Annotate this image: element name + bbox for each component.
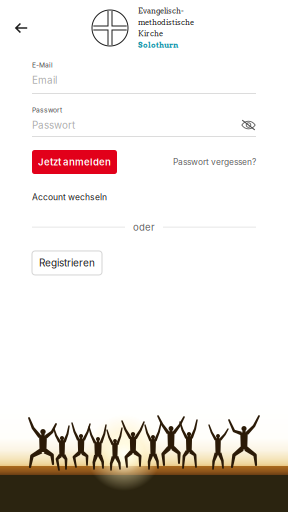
button[interactable]: Passwort vergessen?: [173, 157, 256, 167]
staticText: Passwort vergessen?: [173, 157, 256, 167]
staticText: Passwort: [32, 106, 62, 114]
staticText: Registrieren: [39, 257, 95, 269]
button[interactable]: Show password: [241, 119, 256, 130]
button[interactable]: Registrieren: [32, 251, 102, 275]
staticText: Solothurn: [138, 41, 178, 50]
button[interactable]: Jetzt anmelden: [32, 150, 117, 174]
staticText: Jetzt anmelden: [38, 156, 111, 168]
staticText: methodistische: [138, 18, 194, 27]
staticText: Email: [32, 74, 57, 86]
button[interactable]: Account wechseln: [32, 192, 107, 202]
staticText: oder: [133, 221, 155, 233]
staticText: Evangelisch-: [138, 6, 184, 15]
staticText: Passwort: [32, 119, 75, 131]
staticText: Kirche: [138, 29, 163, 38]
staticText: E-Mail: [32, 61, 53, 69]
button[interactable]: Back: [0, 15, 40, 40]
staticText: Account wechseln: [32, 192, 107, 202]
